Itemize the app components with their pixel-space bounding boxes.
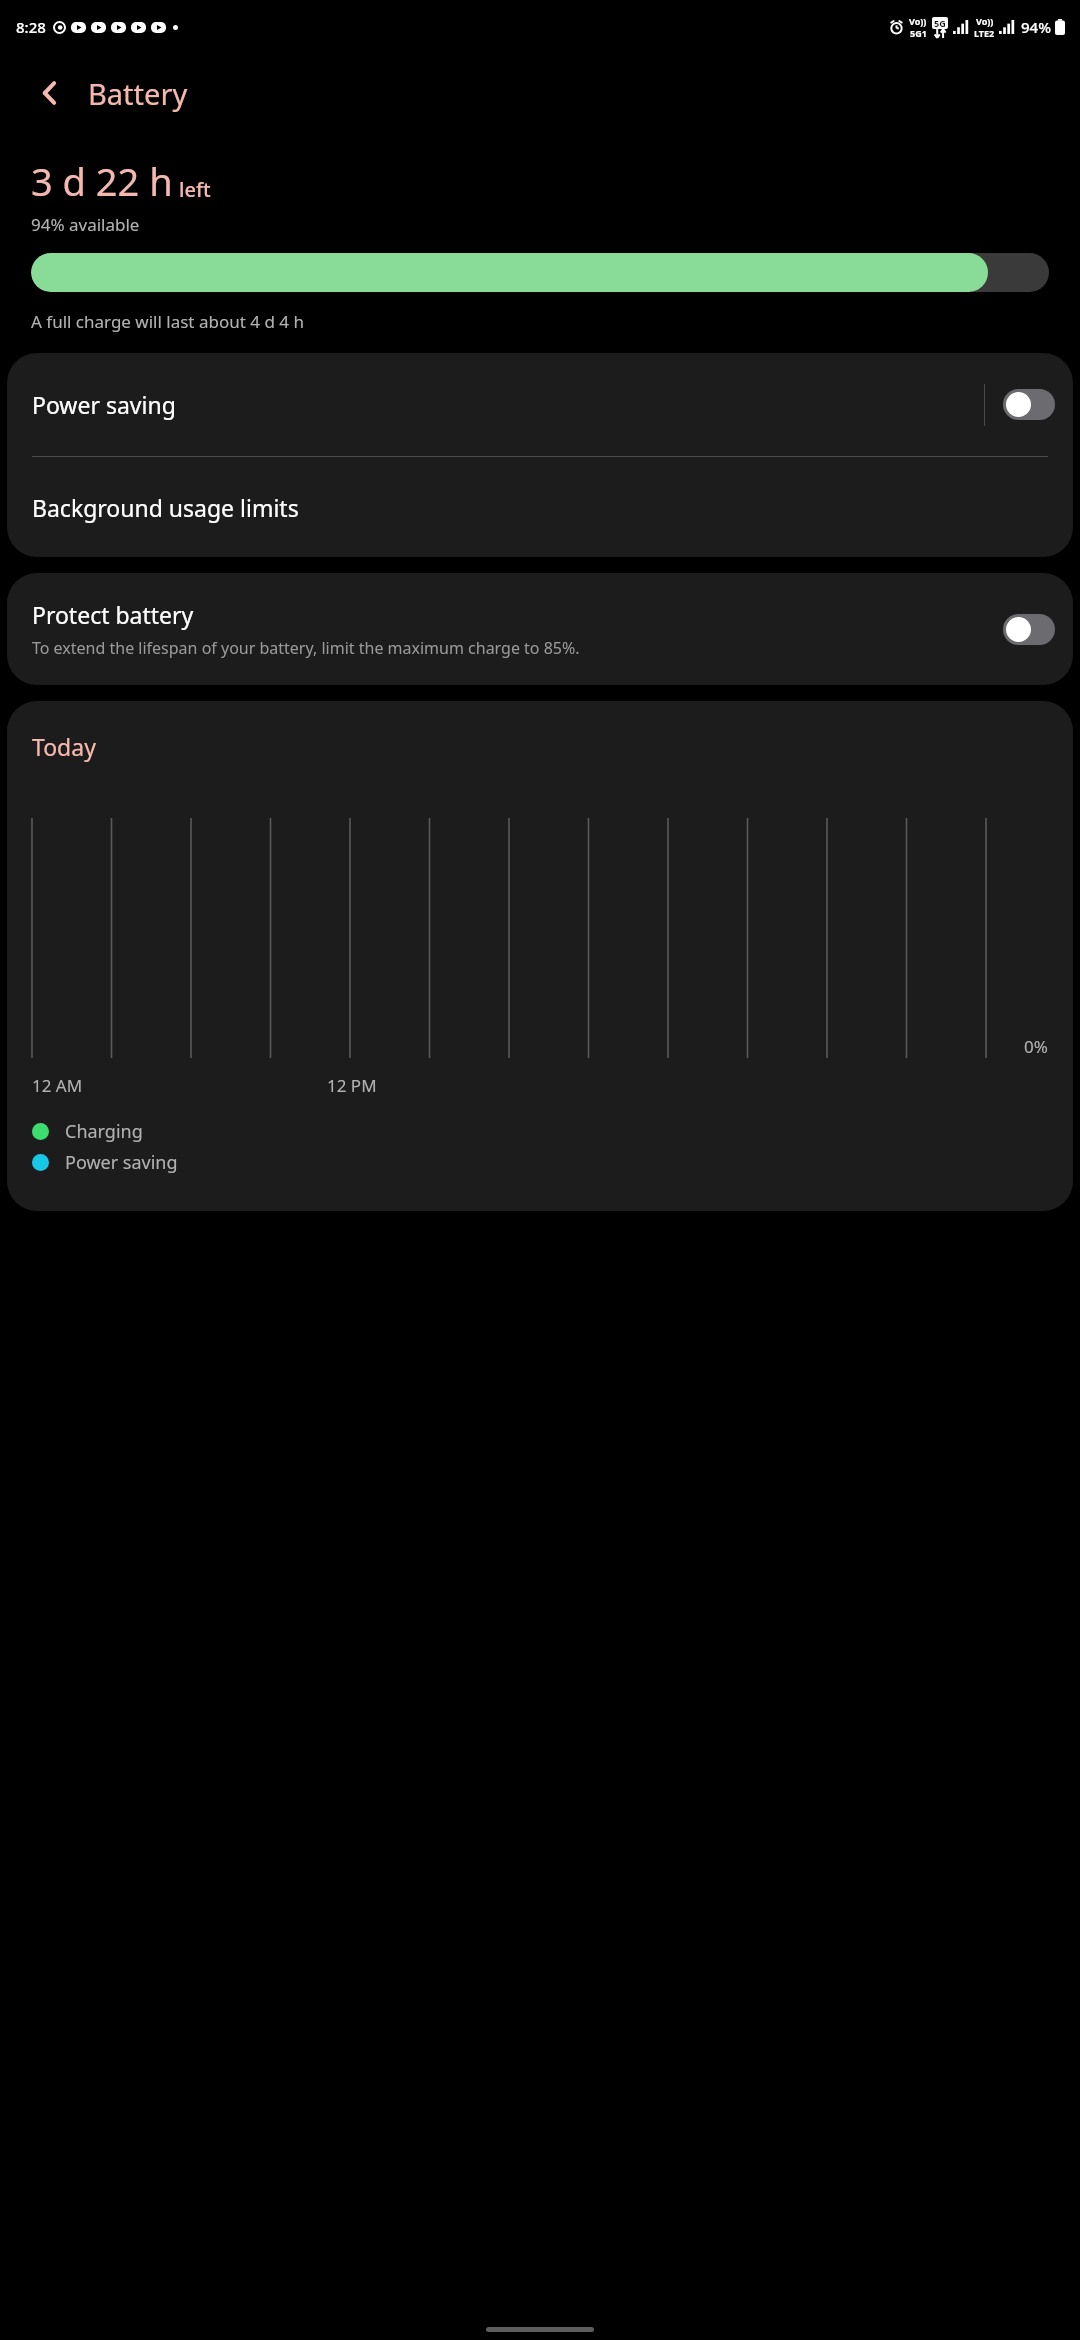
staticText: 12 AM (32, 1074, 83, 1097)
staticText: Power saving (32, 389, 984, 420)
staticText: Today (32, 731, 96, 762)
staticText: Vo)) (909, 15, 927, 27)
staticText: Charging (65, 1119, 143, 1144)
button[interactable]: Protect battery (7, 573, 1073, 685)
staticText: 94% (1021, 17, 1051, 37)
staticText: Protect battery (32, 599, 194, 630)
staticText: 8:28 (16, 17, 46, 37)
staticText: 0% (1024, 1035, 1048, 1058)
staticText: 5G1 (910, 27, 927, 39)
staticText: To extend the lifespan of your battery, … (32, 637, 580, 659)
button[interactable]: Back (22, 65, 78, 121)
staticText: 5G (934, 17, 946, 29)
staticText: 12 PM (327, 1074, 377, 1097)
staticText: Background usage limits (32, 492, 299, 523)
staticText: Power saving (65, 1150, 178, 1175)
staticText: A full charge will last about 4 d 4 h (31, 310, 304, 333)
staticText: Battery (88, 74, 188, 113)
button[interactable]: Background usage limits (7, 457, 1073, 557)
staticText: 94% available (31, 213, 140, 236)
button[interactable]: Power saving (7, 353, 1073, 456)
button[interactable]: Protect battery toggle (1003, 614, 1055, 645)
staticText: 3 d 22 h (31, 155, 173, 207)
staticText: LTE2 (974, 27, 995, 39)
button[interactable]: Power saving toggle (1003, 389, 1055, 420)
staticText: Vo)) (976, 15, 994, 27)
staticText: left (179, 176, 211, 203)
